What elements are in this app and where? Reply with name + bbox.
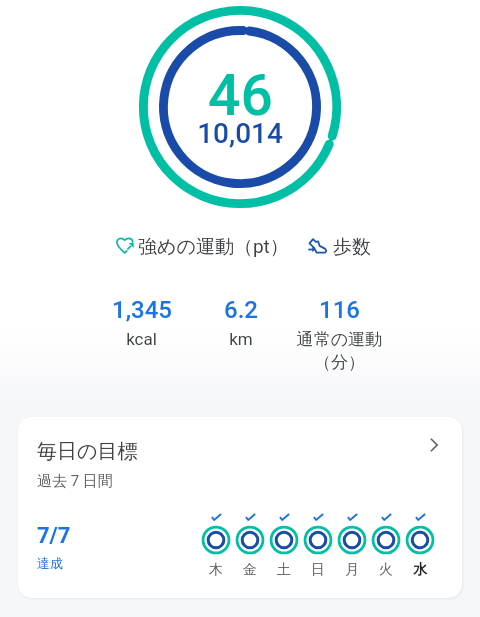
- staticText: 金: [243, 561, 257, 579]
- button[interactable]: 6.2: [191, 296, 290, 349]
- staticText: 木: [209, 561, 223, 579]
- staticText: 116: [319, 296, 360, 324]
- staticText: 達成: [37, 555, 63, 571]
- staticText: 月: [345, 561, 359, 579]
- button[interactable]: 116: [290, 296, 389, 373]
- staticText: kcal: [126, 329, 157, 349]
- staticText: 火: [379, 561, 393, 579]
- staticText: 毎日の目標: [37, 439, 138, 464]
- other: Steps: [308, 238, 327, 254]
- staticText: 土: [277, 561, 291, 579]
- staticText: 6.2: [224, 296, 258, 324]
- other: Open daily goal: [422, 433, 446, 457]
- staticText: 強めの運動（pt）: [138, 235, 289, 259]
- staticText: 過去 7 日間: [37, 472, 113, 491]
- staticText: 日: [311, 561, 325, 579]
- staticText: 通常の運動（分）: [290, 329, 389, 373]
- staticText: 歩数: [333, 235, 371, 259]
- other: Heart Points: [116, 237, 134, 254]
- staticText: 10,014: [197, 117, 283, 150]
- staticText: 水: [413, 561, 427, 579]
- staticText: 46: [208, 62, 273, 129]
- button[interactable]: 毎日の目標: [18, 417, 462, 598]
- staticText: 1,345: [112, 296, 172, 324]
- button[interactable]: 1,345: [92, 296, 191, 349]
- button[interactable]: Heart Points: [116, 235, 289, 259]
- staticText: km: [229, 329, 253, 349]
- button[interactable]: Steps: [308, 235, 371, 259]
- staticText: 7/7: [37, 523, 71, 549]
